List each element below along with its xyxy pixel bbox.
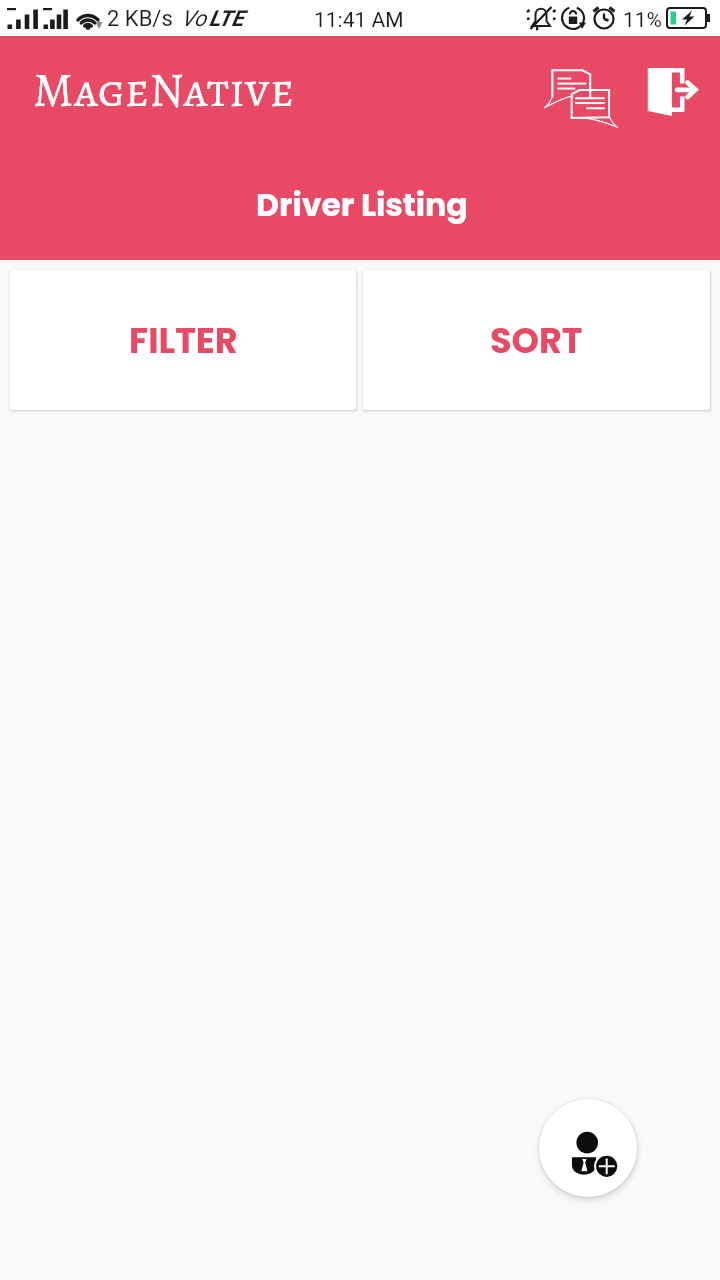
staticText: 11%: [623, 8, 662, 33]
staticText: Vo: [181, 6, 207, 32]
button[interactable]: Logout: [640, 58, 712, 130]
staticText: 2 KB/s: [107, 6, 173, 32]
staticText: FILTER: [129, 316, 238, 365]
staticText: Driver Listing: [256, 183, 468, 227]
button[interactable]: SORT: [363, 270, 710, 410]
button[interactable]: Messages: [543, 58, 623, 138]
staticText: MageNative: [33, 57, 295, 122]
staticText: 11:41 AM: [314, 8, 404, 33]
staticText: SORT: [490, 316, 583, 365]
button[interactable]: Add driver: [539, 1099, 637, 1197]
button[interactable]: FILTER: [10, 270, 356, 410]
staticText: LTE: [209, 6, 244, 32]
